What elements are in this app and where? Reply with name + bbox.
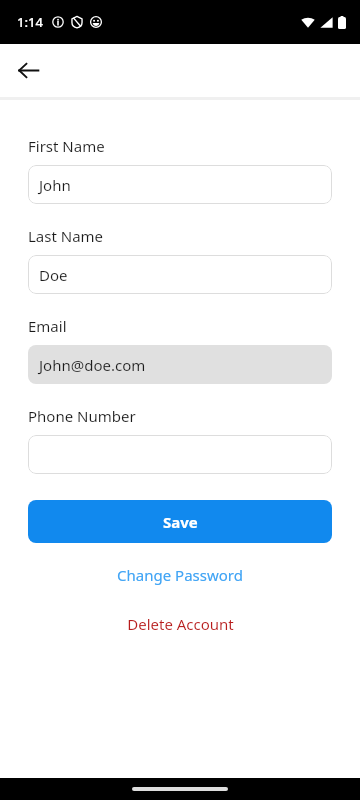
button[interactable]: John bbox=[28, 165, 332, 204]
staticText: John bbox=[39, 175, 71, 195]
button[interactable] bbox=[28, 435, 332, 474]
staticText: 1:14 bbox=[17, 13, 43, 31]
staticText: Doe bbox=[39, 265, 68, 285]
button[interactable]: Doe bbox=[28, 255, 332, 294]
staticText: Email bbox=[28, 316, 67, 336]
staticText: John@doe.com bbox=[39, 355, 146, 375]
staticText: Phone Number bbox=[28, 406, 136, 426]
button[interactable]: John@doe.com bbox=[28, 345, 332, 384]
button[interactable]: Back bbox=[8, 50, 48, 90]
button[interactable]: Delete Account bbox=[28, 608, 332, 640]
staticText: Last Name bbox=[28, 226, 104, 246]
button[interactable]: Change Password bbox=[28, 559, 332, 591]
staticText: First Name bbox=[28, 136, 105, 156]
button[interactable]: Save bbox=[28, 500, 332, 543]
staticText: Delete Account bbox=[127, 614, 234, 634]
staticText: Save bbox=[163, 512, 198, 532]
staticText: Change Password bbox=[117, 565, 243, 585]
